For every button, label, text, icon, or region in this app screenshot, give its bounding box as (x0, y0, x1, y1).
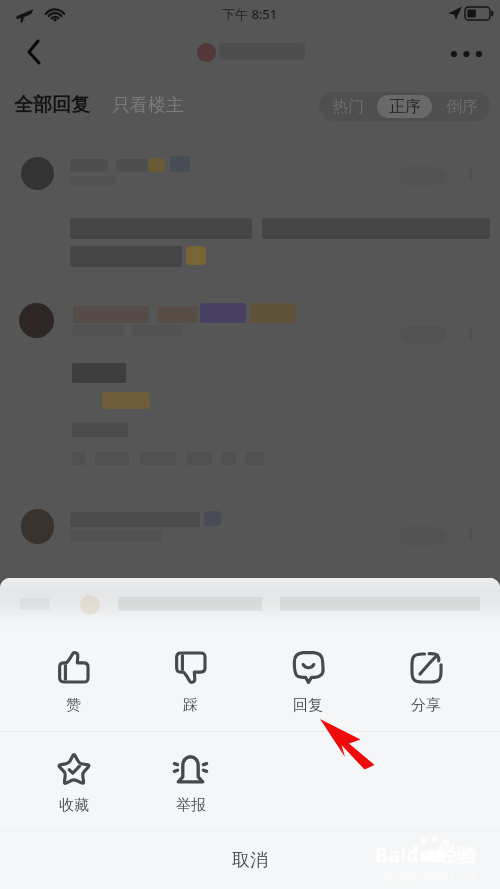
button[interactable]: 热门 (320, 95, 375, 118)
button[interactable]: More options (446, 30, 490, 74)
button[interactable]: 全部回复 (10, 87, 94, 123)
staticText: 热门 (332, 97, 364, 117)
staticText: Baidu 经验 (375, 841, 478, 868)
staticText: 举报 (176, 796, 206, 815)
button[interactable]: Report (132, 732, 249, 815)
staticText: 分享 (411, 696, 441, 715)
button[interactable]: Share (367, 626, 485, 715)
staticText: 只看楼主 (112, 94, 184, 117)
button[interactable]: Dislike (132, 626, 249, 715)
button[interactable]: 正序 (377, 95, 432, 118)
staticText: 踩 (183, 696, 198, 715)
button[interactable]: Reply (249, 626, 367, 715)
button[interactable]: Favorite (15, 732, 132, 815)
staticText: 回复 (293, 696, 323, 715)
staticText: 下午 8:51 (222, 5, 278, 23)
staticText: 赞 (66, 696, 81, 715)
staticText: 全部回复 (14, 93, 90, 117)
button[interactable]: 倒序 (434, 95, 489, 118)
staticText: 倒序 (446, 97, 478, 117)
button[interactable]: 取消 (0, 832, 500, 889)
button[interactable]: 只看楼主 (108, 88, 188, 123)
staticText: 正序 (389, 97, 421, 117)
button[interactable]: 下午 8:51 (0, 0, 500, 889)
staticText: 收藏 (59, 796, 89, 815)
staticText: 取消 (232, 849, 268, 872)
button[interactable]: Like (15, 626, 132, 715)
button[interactable]: Back (11, 29, 55, 73)
